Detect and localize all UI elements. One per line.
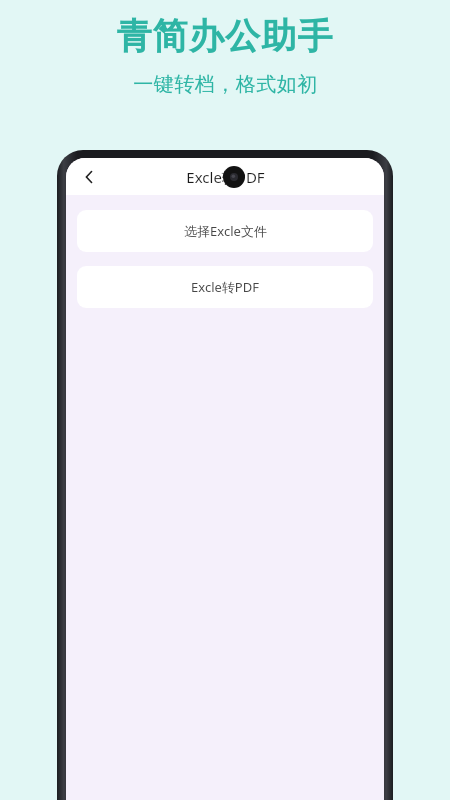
staticText: 选择Excle文件 xyxy=(184,222,267,240)
staticText: Excle转PDF xyxy=(191,278,259,296)
staticText: 青简办公助手 xyxy=(116,14,334,58)
button[interactable]: 选择Excle文件 xyxy=(77,210,373,252)
button[interactable]: Excle转PDF xyxy=(77,266,373,308)
button[interactable]: Back xyxy=(75,163,103,191)
staticText: Excle转PDF xyxy=(186,167,265,187)
staticText: 一键转档，格式如初 xyxy=(133,72,318,97)
